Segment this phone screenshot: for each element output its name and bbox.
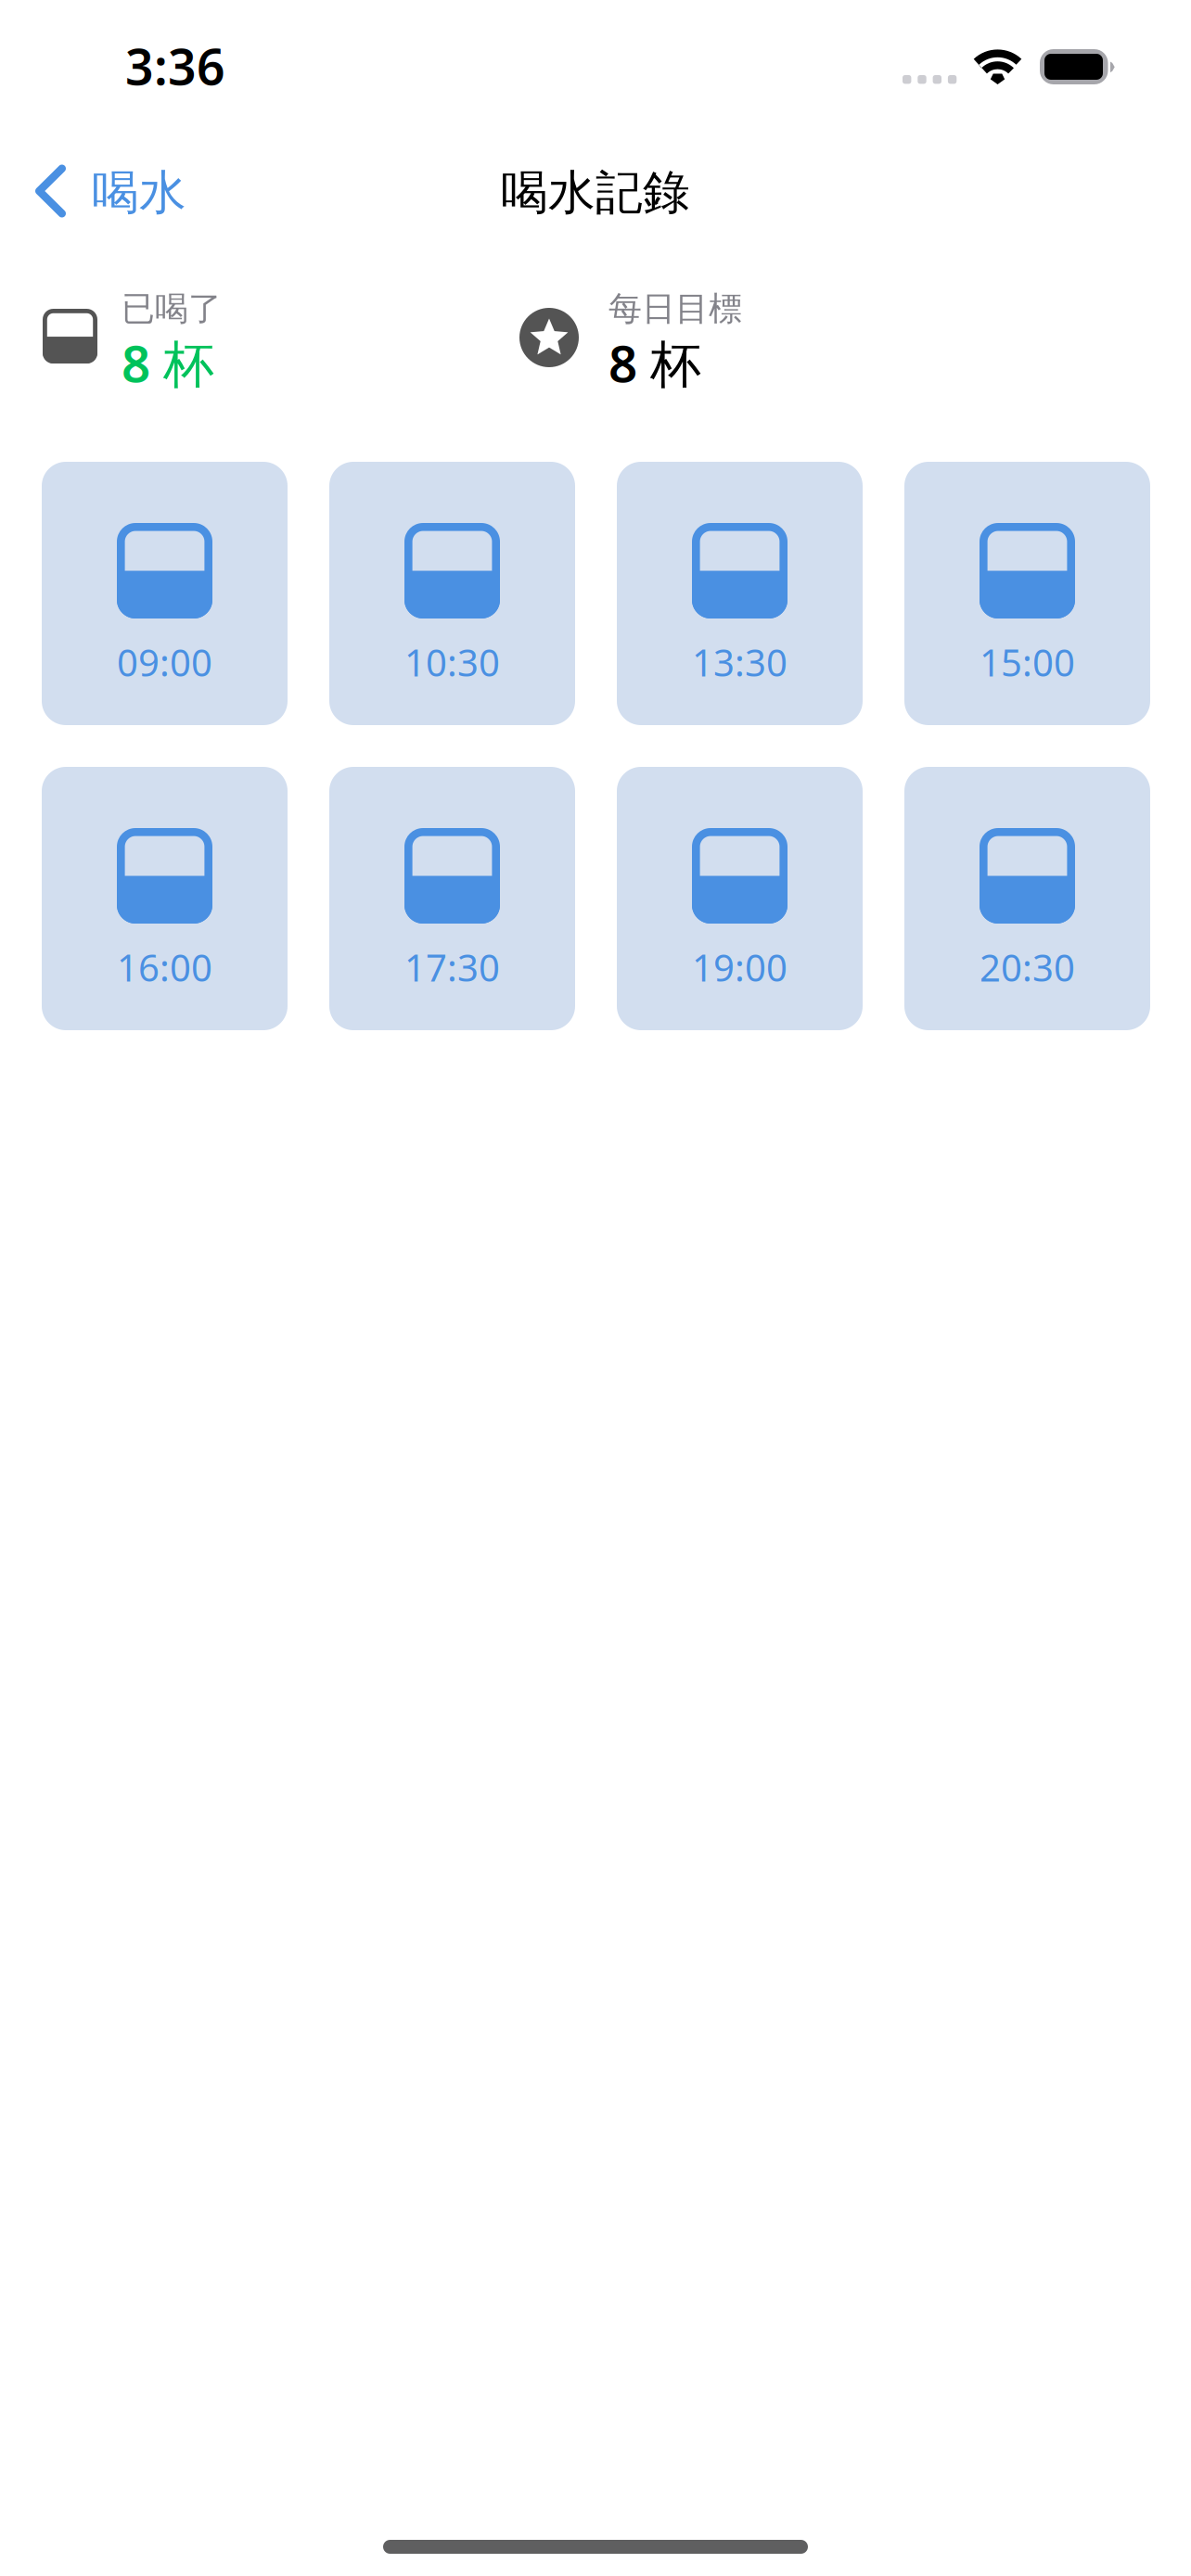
button[interactable]: 17:30: [329, 767, 575, 1030]
staticText: 19:00: [692, 942, 788, 992]
button[interactable]: 09:00: [42, 462, 288, 725]
staticText: 09:00: [117, 637, 212, 687]
staticText: 8 杯: [122, 329, 214, 396]
button[interactable]: 19:00: [617, 767, 863, 1030]
staticText: 17:30: [404, 942, 500, 992]
staticText: 每日目標: [608, 288, 742, 329]
staticText: 15:00: [980, 637, 1075, 687]
staticText: 3:36: [125, 33, 225, 99]
staticText: 10:30: [404, 637, 500, 687]
staticText: 13:30: [692, 637, 788, 687]
button[interactable]: 13:30: [617, 462, 863, 725]
staticText: 喝水記錄: [501, 164, 690, 222]
staticText: 16:00: [117, 942, 212, 992]
button[interactable]: 喝水: [0, 147, 207, 236]
button[interactable]: 16:00: [42, 767, 288, 1030]
staticText: 8 杯: [608, 329, 701, 396]
staticText: 喝水: [92, 164, 186, 222]
button[interactable]: 15:00: [904, 462, 1150, 725]
staticText: 20:30: [980, 942, 1075, 992]
button[interactable]: 10:30: [329, 462, 575, 725]
button[interactable]: 20:30: [904, 767, 1150, 1030]
staticText: 已喝了: [122, 288, 222, 329]
